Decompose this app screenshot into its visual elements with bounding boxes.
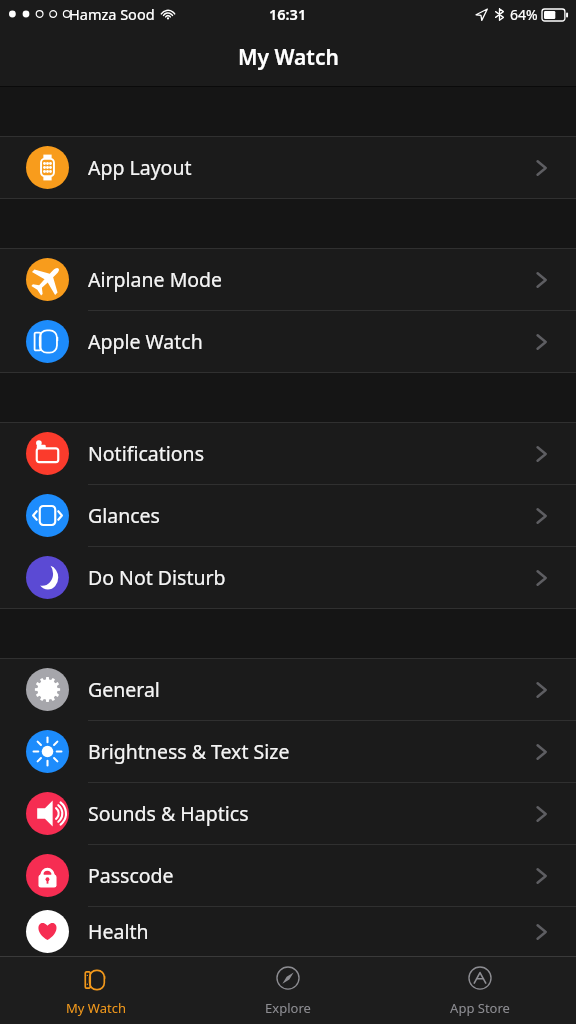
button[interactable]: Airplane Mode	[0, 249, 576, 310]
button[interactable]: Sounds & Haptics	[0, 783, 576, 844]
button[interactable]: General	[0, 659, 576, 720]
button[interactable]: Do Not Disturb	[0, 547, 576, 608]
staticText: General	[88, 676, 160, 703]
staticText: Do Not Disturb	[88, 564, 226, 591]
staticText: Brightness & Text Size	[88, 738, 290, 765]
staticText: App Store	[450, 999, 510, 1017]
staticText: Sounds & Haptics	[88, 800, 249, 827]
staticText: My Watch	[66, 999, 126, 1017]
staticText: Airplane Mode	[88, 266, 223, 293]
button[interactable]: App Layout	[0, 137, 576, 198]
staticText: Notifications	[88, 440, 204, 467]
staticText: Hamza Sood	[69, 4, 155, 24]
staticText: Apple Watch	[88, 328, 203, 355]
other: My Watch	[80, 964, 112, 996]
staticText: Explore	[265, 999, 311, 1017]
other: Explore	[272, 964, 304, 996]
staticText: Glances	[88, 502, 160, 529]
staticText: App Layout	[88, 154, 192, 181]
staticText: 16:31	[269, 4, 307, 24]
staticText: My Watch	[238, 43, 339, 72]
staticText: Health	[88, 918, 149, 945]
button[interactable]: Apple Watch	[0, 311, 576, 372]
other: App Store	[464, 964, 496, 996]
button[interactable]: App Store	[384, 957, 576, 1024]
button[interactable]: Explore	[192, 957, 384, 1024]
staticText: 64%	[510, 5, 538, 24]
button[interactable]: Brightness & Text Size	[0, 721, 576, 782]
button[interactable]: Health	[0, 907, 576, 956]
button[interactable]: Glances	[0, 485, 576, 546]
staticText: Passcode	[88, 862, 174, 889]
button[interactable]: My Watch	[0, 957, 192, 1024]
button[interactable]: Passcode	[0, 845, 576, 906]
button[interactable]: Notifications	[0, 423, 576, 484]
